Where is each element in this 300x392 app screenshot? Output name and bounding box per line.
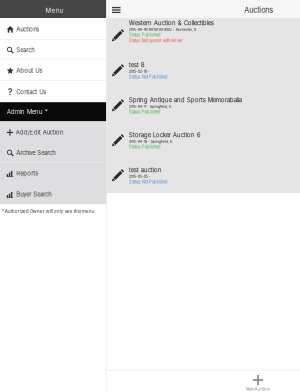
staticText: Status: Published	[129, 144, 161, 149]
button[interactable]: Buyer Search	[0, 183, 106, 204]
button[interactable]: Admin Menu *	[0, 102, 106, 121]
staticText: Status: Not Published	[129, 179, 168, 184]
staticText: Add/Edit Auction	[16, 129, 63, 136]
staticText: Status: Not Published	[129, 74, 168, 79]
staticText: Reports	[16, 170, 38, 177]
staticText: 2015-02-18 -	[129, 69, 150, 74]
button[interactable]: test 8	[107, 53, 300, 88]
staticText: Search	[16, 47, 34, 54]
staticText: Spring Antique and Sports Memorabalia	[129, 96, 242, 104]
button[interactable]: Auctions	[0, 18, 106, 39]
button[interactable]: Reports	[0, 162, 106, 183]
button[interactable]: New Auction	[232, 371, 284, 392]
button[interactable]: Storage Locker Auction 6	[107, 123, 300, 158]
staticText: Contact Us	[16, 89, 46, 96]
staticText: test 8	[129, 61, 145, 69]
button[interactable]: ?	[0, 81, 106, 102]
staticText: 2015-04-11 - Springfield, IL	[129, 104, 172, 109]
staticText: Menu	[45, 7, 63, 14]
staticText: Admin Menu *	[7, 108, 48, 115]
staticText: Buyer Search	[16, 191, 51, 198]
staticText: New Auction	[245, 387, 270, 392]
button[interactable]: Archive Search	[0, 142, 106, 162]
staticText: ?	[8, 87, 13, 97]
staticText: Auctions	[16, 26, 39, 33]
staticText: Status: Published	[129, 32, 161, 37]
staticText: Storage Locker Auction 6	[129, 131, 201, 139]
staticText: Status: Published	[129, 109, 161, 114]
button[interactable]: Spring Antique and Sports Memorabalia	[107, 88, 300, 123]
staticText: Status: Not synced with server	[129, 38, 183, 43]
button[interactable]: Add/Edit Auction	[0, 121, 106, 142]
button[interactable]: Search	[0, 40, 106, 59]
staticText: 2015-04-18 - Springfield, IL	[129, 139, 173, 144]
staticText: About Us	[16, 67, 42, 74]
staticText: Western Auction & Collectibles	[129, 19, 214, 27]
staticText: 2015-05-05 -	[129, 174, 151, 179]
staticText: Archive Search	[16, 149, 55, 156]
button[interactable]: About Us	[0, 60, 106, 80]
button[interactable]: test auction	[107, 158, 300, 193]
staticText: * Authorized Owner will only see this me…	[2, 209, 95, 214]
staticText: 2015-06-16T00:00:00.000Z - Rochester, IL	[129, 27, 197, 32]
button[interactable]: Menu	[108, 1, 124, 19]
staticText: Auctions	[244, 6, 273, 14]
button[interactable]: Western Auction & Collectibles	[107, 18, 300, 53]
staticText: test auction	[129, 166, 162, 174]
